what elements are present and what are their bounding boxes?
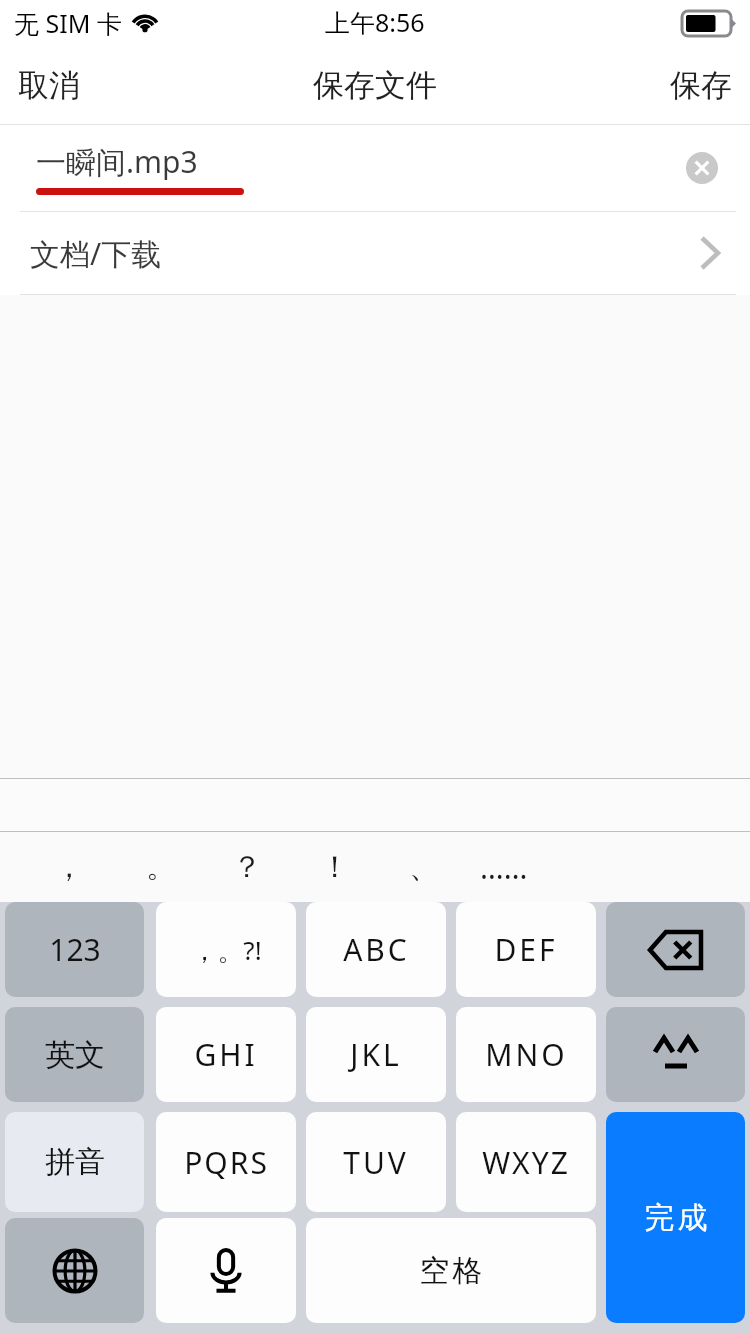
button[interactable]: 取消: [0, 56, 98, 115]
button[interactable]: DEF: [456, 902, 596, 997]
button[interactable]: Backspace: [606, 902, 745, 997]
staticText: 空格: [418, 1252, 484, 1290]
button[interactable]: 拼音: [5, 1112, 144, 1212]
button[interactable]: WXYZ: [456, 1112, 596, 1212]
staticText: PQRS: [184, 1142, 269, 1183]
button[interactable]: MNO: [456, 1007, 596, 1102]
staticText: 文档/下载: [30, 233, 162, 274]
button[interactable]: ，。?!: [156, 902, 296, 997]
staticText: 上午8:56: [325, 5, 425, 39]
staticText: 。: [146, 848, 176, 886]
staticText: 拼音: [45, 1143, 105, 1181]
button[interactable]: PQRS: [156, 1112, 296, 1212]
staticText: GHI: [194, 1034, 258, 1075]
staticText: 英文: [45, 1036, 105, 1074]
button[interactable]: TUV: [306, 1112, 446, 1212]
staticText: 取消: [18, 66, 80, 105]
staticText: 无 SIM 卡: [14, 6, 122, 40]
staticText: 123: [49, 929, 101, 970]
staticText: JKL: [350, 1034, 402, 1075]
staticText: MNO: [485, 1034, 568, 1075]
staticText: ，: [54, 848, 84, 886]
button[interactable]: Voice input: [156, 1218, 296, 1323]
staticText: DEF: [494, 929, 558, 970]
staticText: 一瞬间.mp3: [36, 141, 198, 182]
button[interactable]: 。: [122, 832, 200, 902]
button[interactable]: ，: [30, 832, 108, 902]
button[interactable]: 保存: [652, 56, 750, 115]
button[interactable]: ……: [465, 832, 543, 902]
staticText: ABC: [343, 929, 410, 970]
staticText: 完成: [643, 1199, 709, 1237]
button[interactable]: ？: [208, 832, 286, 902]
button[interactable]: 文档/下载: [0, 212, 750, 294]
button[interactable]: Emoticons: [606, 1007, 745, 1102]
staticText: ，。?!: [191, 932, 262, 968]
staticText: 保存文件: [313, 66, 437, 105]
button[interactable]: Clear text: [682, 148, 722, 188]
staticText: WXYZ: [482, 1142, 570, 1183]
button[interactable]: 空格: [306, 1218, 596, 1323]
button[interactable]: 完成: [606, 1112, 745, 1323]
staticText: TUV: [343, 1142, 409, 1183]
button[interactable]: Switch keyboard: [5, 1218, 144, 1323]
staticText: ……: [480, 847, 528, 888]
staticText: 保存: [670, 66, 732, 105]
staticText: ！: [320, 848, 350, 886]
button[interactable]: JKL: [306, 1007, 446, 1102]
button[interactable]: 123: [5, 902, 144, 997]
button[interactable]: GHI: [156, 1007, 296, 1102]
staticText: 、: [409, 848, 439, 886]
button[interactable]: 英文: [5, 1007, 144, 1102]
button[interactable]: ABC: [306, 902, 446, 997]
staticText: ？: [232, 848, 262, 886]
button[interactable]: ！: [296, 832, 374, 902]
button[interactable]: 、: [385, 832, 463, 902]
